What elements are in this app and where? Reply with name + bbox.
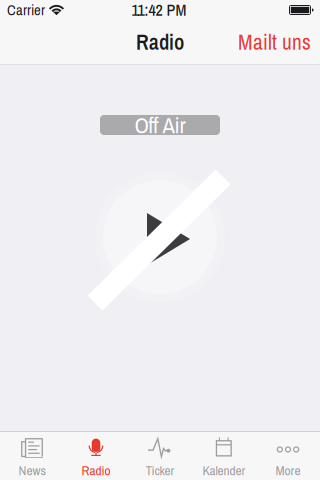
button[interactable]: Ticker bbox=[128, 431, 192, 480]
staticText: Kalender bbox=[202, 461, 245, 479]
staticText: News bbox=[18, 461, 45, 479]
staticText: Ticker bbox=[145, 461, 174, 479]
staticText: Radio bbox=[81, 461, 110, 479]
button[interactable]: More bbox=[256, 431, 320, 480]
button[interactable]: News bbox=[0, 431, 64, 480]
staticText: Radio bbox=[136, 28, 184, 56]
button[interactable]: Radio bbox=[64, 431, 128, 480]
staticText: More bbox=[275, 461, 300, 479]
staticText: Off Air bbox=[134, 110, 185, 140]
staticText: Mailt uns bbox=[238, 28, 311, 56]
staticText: Carrier bbox=[7, 0, 45, 20]
button[interactable]: Kalender bbox=[192, 431, 256, 480]
button[interactable]: Mailt uns bbox=[226, 19, 320, 65]
staticText: 11:42 PM bbox=[131, 0, 186, 21]
